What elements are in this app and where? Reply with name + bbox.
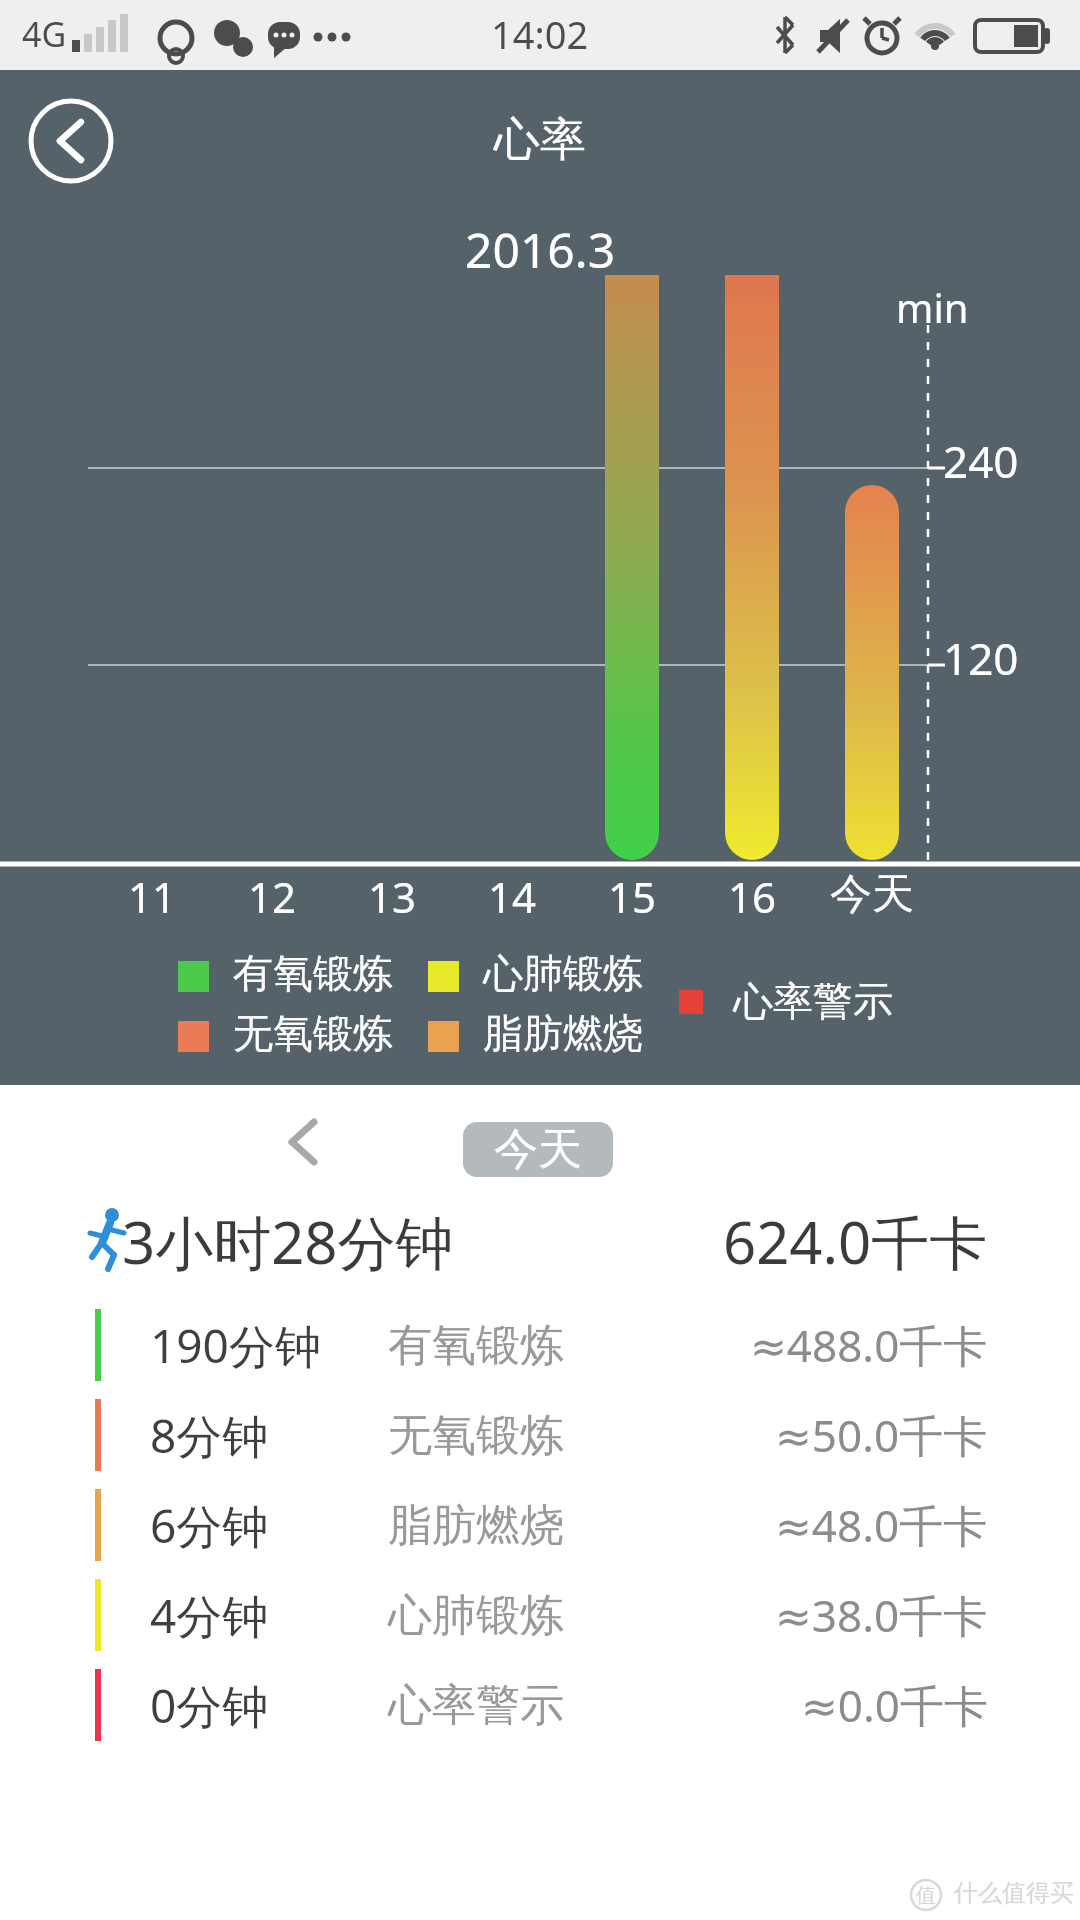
staticText: 4G: [22, 11, 67, 57]
button[interactable]: 今天: [463, 1122, 613, 1177]
staticText: 240: [943, 431, 1019, 491]
staticText: 有氧锻炼: [388, 1318, 564, 1373]
staticText: 今天: [494, 1122, 582, 1177]
staticText: 心率警示: [388, 1678, 564, 1733]
staticText: 脂肪燃烧: [483, 1008, 643, 1058]
staticText: 2016.3: [465, 217, 616, 282]
staticText: 8分钟: [150, 1404, 269, 1467]
button[interactable]: 8分钟: [0, 1399, 1080, 1471]
staticText: 12: [248, 868, 297, 925]
button[interactable]: 4分钟: [0, 1579, 1080, 1651]
button[interactable]: [270, 1110, 334, 1174]
staticText: 心肺锻炼: [483, 948, 643, 998]
staticText: ≈488.0千卡: [750, 1315, 988, 1375]
staticText: 4分钟: [150, 1584, 269, 1647]
staticText: 6分钟: [150, 1494, 269, 1557]
staticText: 13: [368, 868, 417, 925]
staticText: 值: [916, 1883, 936, 1908]
staticText: 14:02: [491, 8, 589, 60]
staticText: 脂肪燃烧: [388, 1498, 564, 1553]
staticText: ≈50.0千卡: [775, 1405, 988, 1465]
staticText: ≈48.0千卡: [775, 1495, 988, 1555]
staticText: 心率警示: [733, 976, 893, 1026]
staticText: 14: [488, 868, 537, 925]
staticText: ≈0.0千卡: [801, 1675, 988, 1735]
staticText: 0分钟: [150, 1674, 269, 1737]
staticText: 无氧锻炼: [388, 1408, 564, 1463]
staticText: 心肺锻炼: [388, 1588, 564, 1643]
button[interactable]: 190分钟: [0, 1309, 1080, 1381]
staticText: 无氧锻炼: [233, 1008, 393, 1058]
staticText: 11: [128, 868, 177, 925]
button[interactable]: 6分钟: [0, 1489, 1080, 1561]
button[interactable]: 0分钟: [0, 1669, 1080, 1741]
button[interactable]: [27, 97, 115, 185]
staticText: min: [896, 280, 969, 334]
staticText: 16: [728, 868, 777, 925]
staticText: 3小时28分钟: [122, 1202, 454, 1281]
staticText: 什么值得买: [954, 1878, 1074, 1908]
staticText: 624.0千卡: [723, 1202, 988, 1281]
staticText: ≈38.0千卡: [775, 1585, 988, 1645]
staticText: 今天: [830, 868, 914, 921]
staticText: 15: [608, 868, 657, 925]
staticText: 心率: [494, 111, 586, 169]
staticText: 190分钟: [150, 1314, 321, 1377]
staticText: 120: [943, 628, 1019, 688]
staticText: 有氧锻炼: [233, 948, 393, 998]
